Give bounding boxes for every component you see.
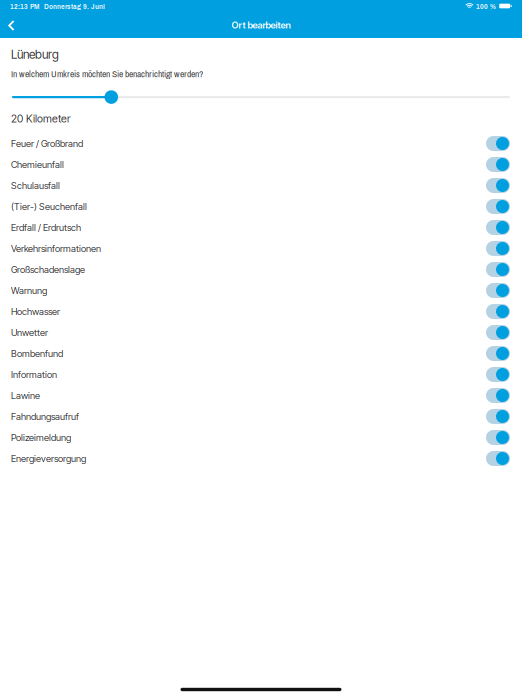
staticText: 12:13 PM (10, 1, 39, 11)
button[interactable]: (Tier-) Seuchenfall (0, 196, 522, 217)
button[interactable]: Erdfall / Erdrutsch (0, 217, 522, 238)
staticText: Warnung (11, 285, 47, 296)
staticText: Energieversorgung (11, 453, 86, 464)
staticText: Chemieunfall (11, 159, 64, 170)
button[interactable]: Energieversorgung (0, 448, 522, 469)
staticText: 20 Kilometer (11, 112, 70, 125)
button[interactable]: Hochwasser (0, 301, 522, 322)
staticText: Bombenfund (11, 348, 63, 359)
staticText: (Tier-) Seuchenfall (11, 201, 87, 212)
button[interactable]: Back (0, 15, 26, 35)
staticText: Polizeimeldung (11, 432, 71, 443)
staticText: Information (11, 369, 57, 380)
button[interactable]: Feuer / Großbrand (0, 133, 522, 154)
staticText: Donnerstag 9. Juni (44, 1, 105, 11)
button[interactable]: Fahndungsaufruf (0, 406, 522, 427)
button[interactable]: Warnung (0, 280, 522, 301)
button[interactable]: Schulausfall (0, 175, 522, 196)
staticText: In welchem Umkreis möchten Sie benachric… (11, 67, 203, 80)
button[interactable]: Unwetter (0, 322, 522, 343)
button[interactable]: Verkehrsinformationen (0, 238, 522, 259)
staticText: Lawine (11, 390, 40, 401)
button[interactable]: Lawine (0, 385, 522, 406)
staticText: Großschadenslage (11, 264, 85, 275)
staticText: Hochwasser (11, 306, 60, 317)
staticText: Schulausfall (11, 180, 60, 191)
staticText: Verkehrsinformationen (11, 243, 101, 254)
button[interactable]: Großschadenslage (0, 259, 522, 280)
staticText: Lüneburg (11, 47, 59, 61)
staticText: 100 % (476, 1, 496, 11)
staticText: Erdfall / Erdrutsch (11, 222, 81, 233)
staticText: Feuer / Großbrand (11, 138, 83, 149)
staticText: Unwetter (11, 327, 48, 338)
button[interactable]: Bombenfund (0, 343, 522, 364)
button[interactable]: Information (0, 364, 522, 385)
button[interactable]: Chemieunfall (0, 154, 522, 175)
button[interactable]: Polizeimeldung (0, 427, 522, 448)
staticText: Ort bearbeiten (231, 19, 290, 31)
staticText: Fahndungsaufruf (11, 411, 79, 422)
